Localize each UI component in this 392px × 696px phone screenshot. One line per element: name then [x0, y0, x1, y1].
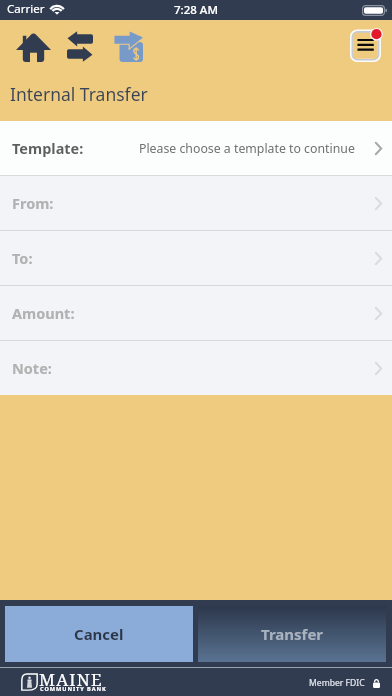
staticText: Transfer — [261, 624, 324, 644]
staticText: COMMUNITY BANK — [40, 685, 107, 693]
staticText: MAINE — [39, 668, 103, 691]
button[interactable]: Pay — [106, 28, 150, 68]
button[interactable]: Cancel — [5, 606, 193, 662]
staticText: Internal Transfer — [10, 82, 148, 106]
button[interactable]: Transfers — [60, 26, 100, 68]
staticText: Please choose a template to continue — [139, 140, 355, 157]
button[interactable]: From: — [0, 176, 392, 230]
button[interactable]: Transfer — [198, 606, 386, 662]
staticText: Template: — [12, 138, 84, 158]
staticText: 7:28 AM — [174, 2, 218, 18]
button[interactable]: Template: — [0, 121, 392, 175]
staticText: Amount: — [12, 303, 75, 323]
staticText: Cancel — [74, 624, 124, 644]
button[interactable]: To: — [0, 231, 392, 285]
button[interactable]: Menu — [344, 24, 388, 68]
button[interactable]: Note: — [0, 341, 392, 395]
staticText: Carrier — [7, 1, 45, 17]
button[interactable]: Home — [8, 27, 58, 69]
staticText: Note: — [12, 358, 52, 378]
staticText: Member FDIC — [309, 677, 365, 689]
staticText: From: — [12, 193, 54, 213]
staticText: To: — [12, 248, 33, 268]
button[interactable]: Amount: — [0, 286, 392, 340]
